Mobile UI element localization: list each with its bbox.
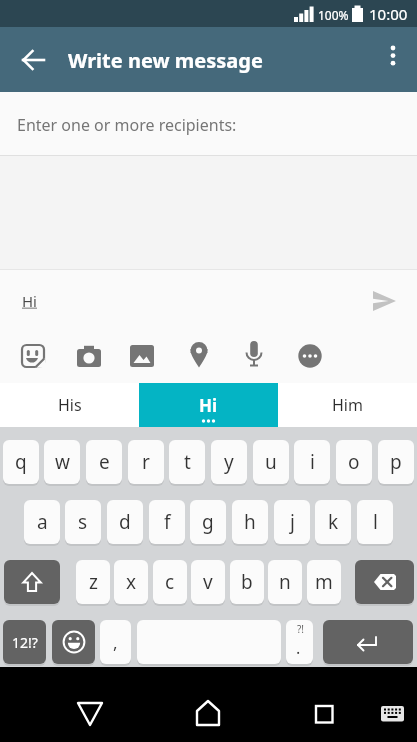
staticText: b <box>241 569 253 595</box>
button[interactable]: 12!? <box>3 620 46 664</box>
button[interactable]: m <box>307 560 341 604</box>
button[interactable] <box>286 620 313 664</box>
button[interactable]: l <box>357 500 393 544</box>
button[interactable] <box>243 340 265 368</box>
staticText: Hi <box>22 291 37 311</box>
staticText: Him <box>332 394 363 416</box>
staticText: p <box>390 449 402 475</box>
button[interactable] <box>52 620 95 664</box>
staticText: s <box>78 509 88 535</box>
button[interactable]: e <box>86 440 122 484</box>
button[interactable] <box>298 344 322 368</box>
staticText: f <box>164 509 171 535</box>
button[interactable]: k <box>315 500 351 544</box>
staticText: His <box>58 394 82 416</box>
button[interactable]: t <box>169 440 205 484</box>
button[interactable] <box>20 343 46 369</box>
staticText: y <box>224 449 234 475</box>
staticText: Enter one or more recipients: <box>17 114 237 136</box>
staticText: k <box>328 509 339 535</box>
button[interactable]: q <box>3 440 39 484</box>
button[interactable]: f <box>149 500 185 544</box>
staticText: Write new message <box>68 47 263 74</box>
staticText: n <box>279 569 291 595</box>
staticText: q <box>15 449 27 475</box>
button[interactable]: b <box>230 560 264 604</box>
button[interactable]: w <box>44 440 80 484</box>
staticText: ?! <box>297 622 305 636</box>
button[interactable] <box>180 680 236 736</box>
button[interactable] <box>375 27 417 92</box>
button[interactable]: v <box>191 560 225 604</box>
button[interactable]: u <box>253 440 289 484</box>
button[interactable]: h <box>232 500 268 544</box>
button[interactable] <box>0 270 417 383</box>
button[interactable]: n <box>268 560 302 604</box>
button[interactable] <box>4 560 60 604</box>
button[interactable]: c <box>153 560 187 604</box>
staticText: g <box>202 509 214 535</box>
staticText: o <box>348 449 360 475</box>
button[interactable]: r <box>128 440 164 484</box>
staticText: u <box>265 449 277 475</box>
button[interactable]: y <box>211 440 247 484</box>
button[interactable]: Hi <box>139 383 278 427</box>
button[interactable] <box>137 620 281 664</box>
button[interactable] <box>370 288 400 314</box>
button[interactable] <box>375 695 411 731</box>
button[interactable] <box>0 92 417 155</box>
button[interactable]: a <box>24 500 60 544</box>
button[interactable] <box>355 560 414 604</box>
staticText: j <box>290 509 295 535</box>
staticText: x <box>126 569 137 595</box>
staticText: c <box>165 569 175 595</box>
staticText: r <box>142 449 150 475</box>
staticText: . <box>296 637 301 659</box>
staticText: v <box>203 569 213 595</box>
button[interactable] <box>129 344 155 368</box>
staticText: 100% <box>318 7 349 23</box>
staticText: m <box>315 569 333 595</box>
staticText: Hi <box>199 394 218 417</box>
button[interactable]: o <box>336 440 372 484</box>
staticText: 10:00 <box>369 4 408 24</box>
staticText: a <box>37 509 48 535</box>
button[interactable] <box>75 343 103 369</box>
staticText: z <box>89 569 98 595</box>
staticText: i <box>310 449 315 475</box>
staticText: w <box>55 449 70 475</box>
button[interactable]: , <box>100 620 131 664</box>
button[interactable]: Him <box>278 383 417 427</box>
button[interactable] <box>297 680 353 736</box>
staticText: t <box>184 449 191 475</box>
staticText: d <box>119 509 131 535</box>
button[interactable]: j <box>274 500 310 544</box>
button[interactable]: p <box>378 440 414 484</box>
staticText: h <box>244 509 256 535</box>
staticText: l <box>373 509 378 535</box>
button[interactable] <box>188 341 210 369</box>
button[interactable]: His <box>0 383 139 427</box>
staticText: e <box>99 449 110 475</box>
button[interactable] <box>323 620 413 664</box>
button[interactable]: i <box>294 440 330 484</box>
button[interactable]: g <box>190 500 226 544</box>
button[interactable]: d <box>107 500 143 544</box>
button[interactable]: x <box>114 560 148 604</box>
staticText: 12!? <box>12 633 38 652</box>
button[interactable] <box>0 27 66 92</box>
staticText: , <box>113 631 118 654</box>
button[interactable] <box>62 680 118 736</box>
button[interactable]: z <box>76 560 110 604</box>
button[interactable]: s <box>65 500 101 544</box>
